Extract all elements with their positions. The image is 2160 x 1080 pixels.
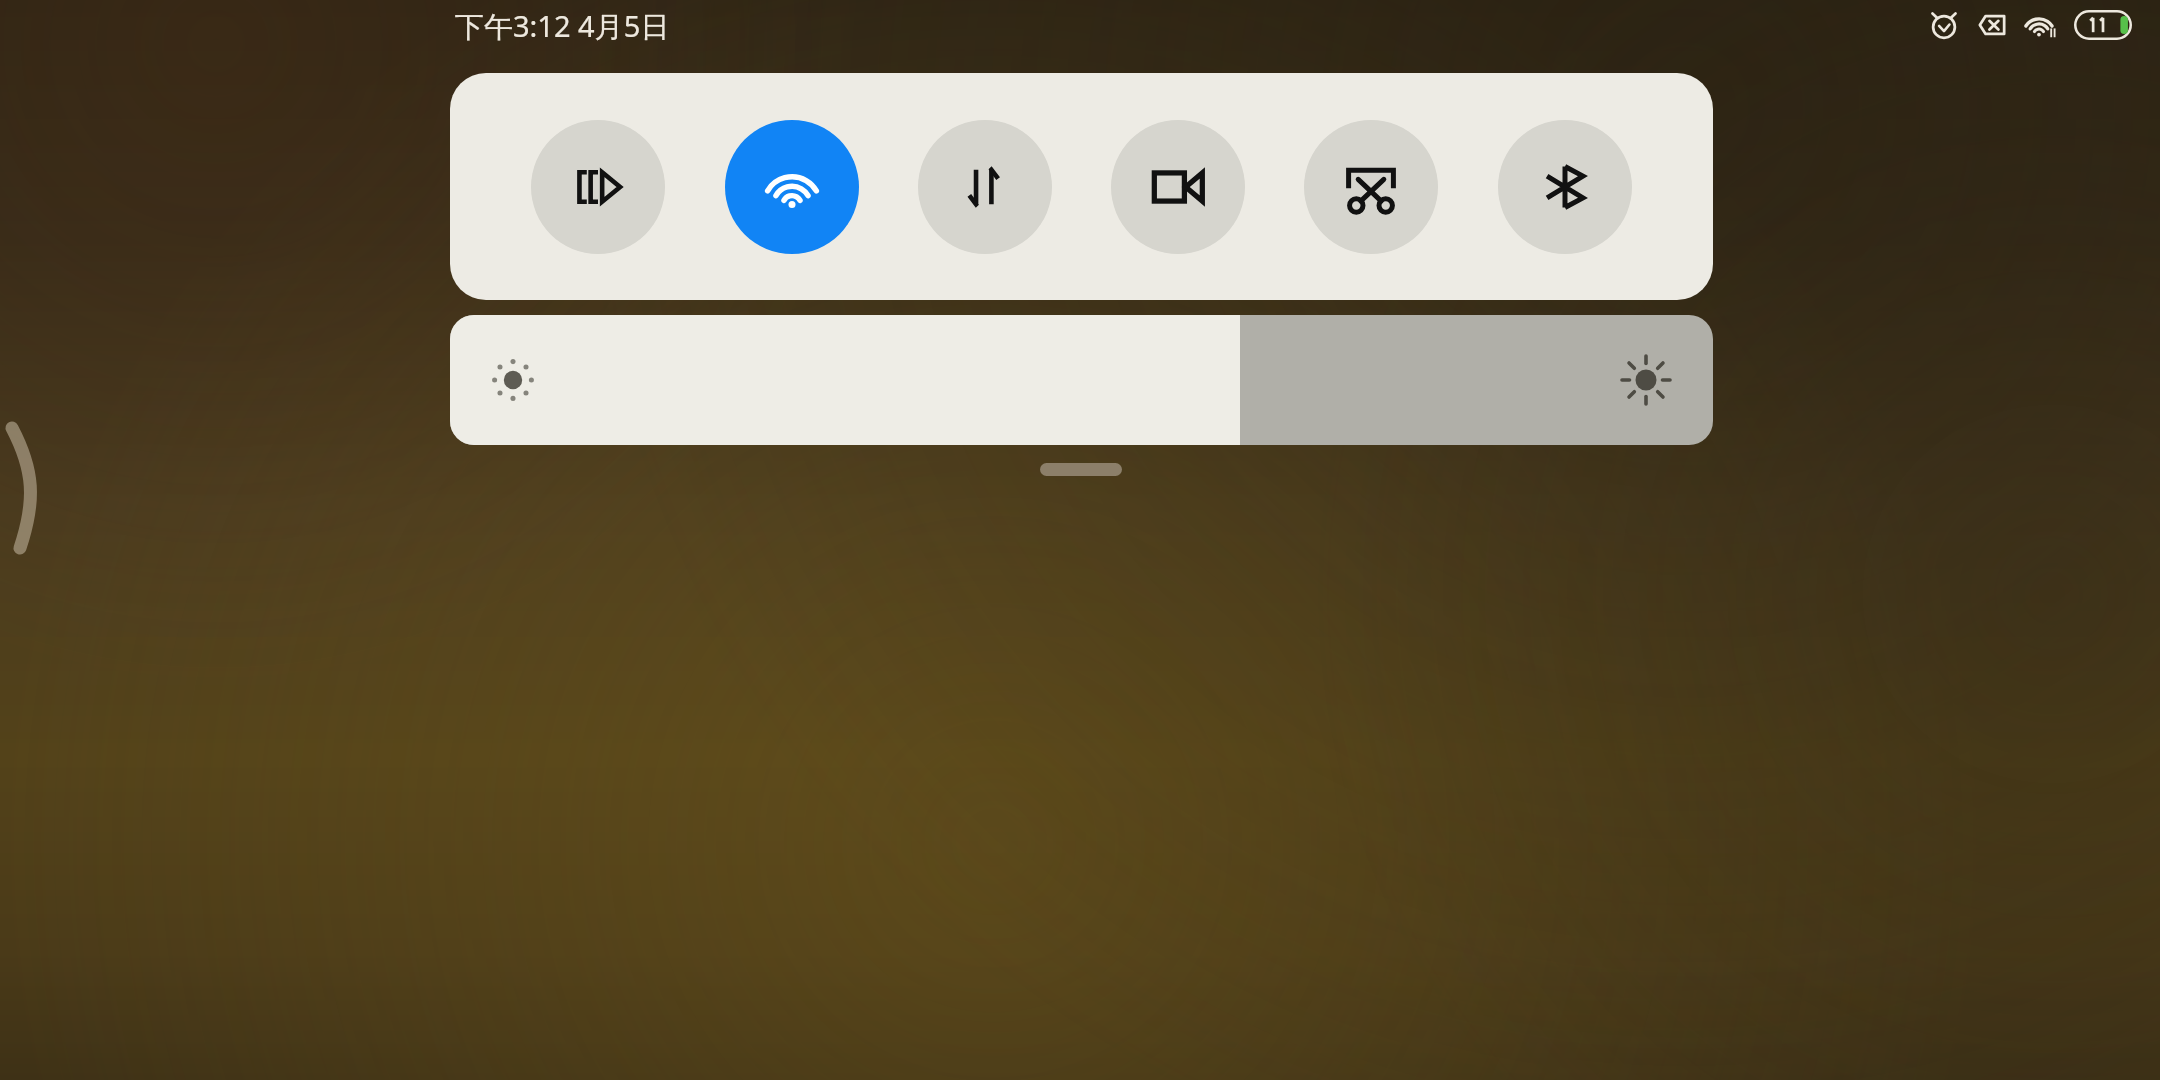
button[interactable]	[1040, 463, 1122, 476]
button[interactable]: Screen record	[1111, 120, 1245, 254]
button[interactable]	[450, 315, 1713, 445]
button[interactable]: Mobile data	[918, 120, 1052, 254]
button[interactable]: Cast	[531, 120, 665, 254]
button[interactable]: Screenshot	[1304, 120, 1438, 254]
button[interactable]: Wi-Fi	[725, 120, 859, 254]
staticText: 下午3:12 4月5日	[455, 6, 670, 46]
button[interactable]: Bluetooth	[1498, 120, 1632, 254]
